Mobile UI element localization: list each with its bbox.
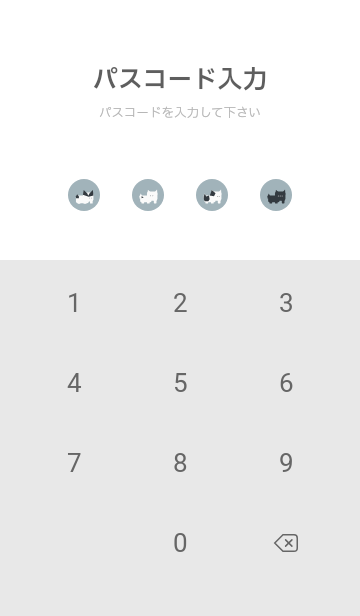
other: Passcode dot 4 xyxy=(260,179,292,211)
staticText: パスコード入力 xyxy=(92,62,268,99)
button[interactable]: 6 xyxy=(246,343,326,423)
button[interactable]: 3 xyxy=(246,263,326,343)
staticText: 0 xyxy=(173,528,188,558)
button[interactable]: 4 xyxy=(34,343,114,423)
staticText: 2 xyxy=(173,288,188,318)
button[interactable]: 9 xyxy=(246,423,326,503)
other: Passcode dot 3 xyxy=(196,179,228,211)
staticText: パスコードを入力して下さい xyxy=(99,104,261,123)
button[interactable]: 0 xyxy=(140,503,220,583)
button[interactable]: Backspace xyxy=(246,503,326,583)
staticText: 4 xyxy=(67,368,82,398)
staticText: 5 xyxy=(173,368,188,398)
button[interactable]: 5 xyxy=(140,343,220,423)
other: Passcode dot 1 xyxy=(68,179,100,211)
staticText: 3 xyxy=(279,288,294,318)
staticText: 7 xyxy=(67,448,82,478)
button[interactable]: 1 xyxy=(34,263,114,343)
button[interactable]: 2 xyxy=(140,263,220,343)
staticText: 1 xyxy=(67,288,82,318)
staticText: 9 xyxy=(279,448,294,478)
other: Passcode dot 2 xyxy=(132,179,164,211)
staticText: 8 xyxy=(173,448,188,478)
staticText: 6 xyxy=(279,368,294,398)
button[interactable]: 7 xyxy=(34,423,114,503)
button[interactable]: 8 xyxy=(140,423,220,503)
